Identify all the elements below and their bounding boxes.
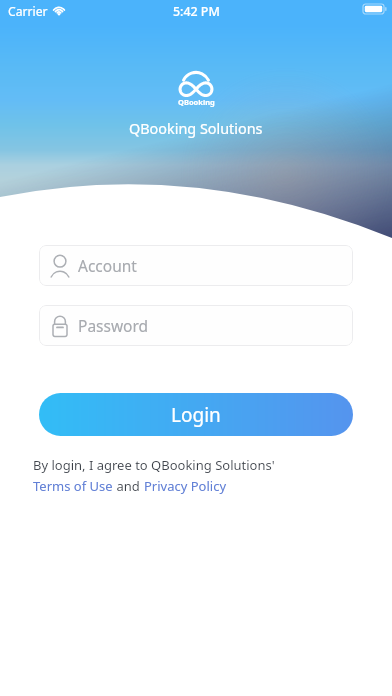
button[interactable]: Terms of Use [33,477,113,495]
staticText: Login [171,402,221,428]
button[interactable]: Account [39,245,353,286]
staticText: QBooking Solutions [129,119,263,139]
staticText: QBooking [178,97,215,107]
staticText: Carrier [8,3,48,20]
button[interactable]: Login [39,393,353,436]
staticText: 5:42 PM [173,3,220,20]
staticText: Account [78,255,137,276]
staticText: By login, I agree to QBooking Solutions' [33,456,275,474]
button[interactable]: Password [39,305,353,346]
button[interactable]: Privacy Policy [144,477,227,495]
staticText: Password [78,315,149,336]
staticText: and [113,477,144,495]
